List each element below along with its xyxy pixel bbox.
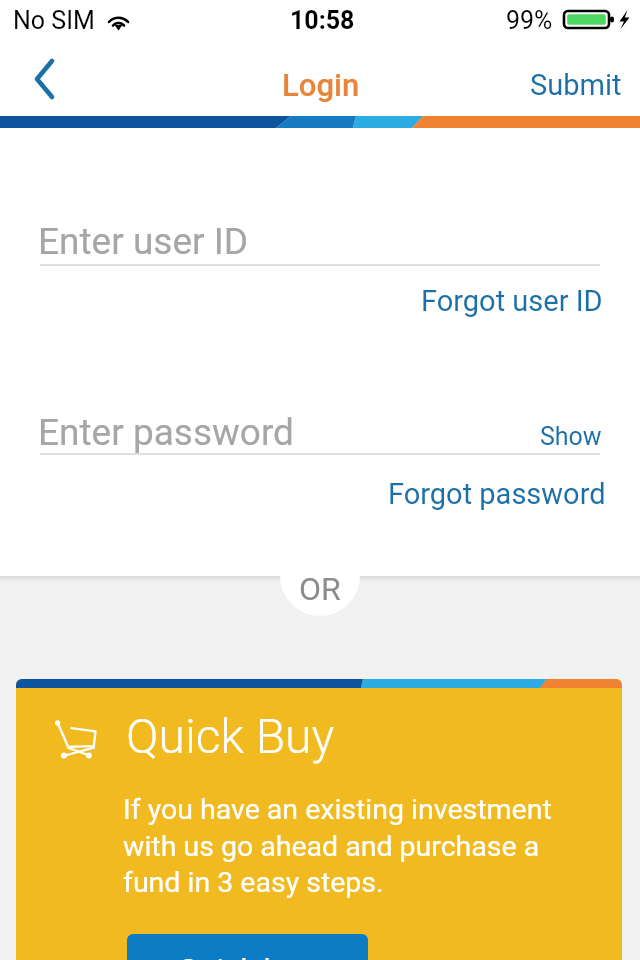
button[interactable]: Forgot password: [379, 474, 615, 514]
staticText: OR: [299, 570, 341, 608]
staticText: Quick Buy: [126, 708, 335, 764]
staticText: Login: [282, 67, 360, 103]
button[interactable]: Forgot user ID: [412, 281, 612, 321]
button[interactable]: Quick Buy: [16, 679, 622, 960]
button[interactable]: Submit: [512, 55, 640, 115]
staticText: Enter password: [38, 411, 294, 454]
staticText: If you have an existing investment with …: [123, 793, 552, 899]
button[interactable]: Show: [533, 419, 609, 454]
staticText: Show: [540, 422, 602, 451]
staticText: 99%: [506, 6, 553, 35]
staticText: Quick buy: [178, 952, 313, 960]
staticText: 10:58: [290, 6, 355, 35]
staticText: No SIM: [13, 6, 95, 35]
staticText: Submit: [530, 68, 622, 102]
button[interactable]: Back: [6, 46, 78, 114]
staticText: Enter user ID: [38, 220, 249, 263]
button[interactable]: Quick buy: [127, 934, 368, 960]
staticText: Forgot password: [388, 477, 606, 511]
staticText: Forgot user ID: [421, 284, 603, 318]
